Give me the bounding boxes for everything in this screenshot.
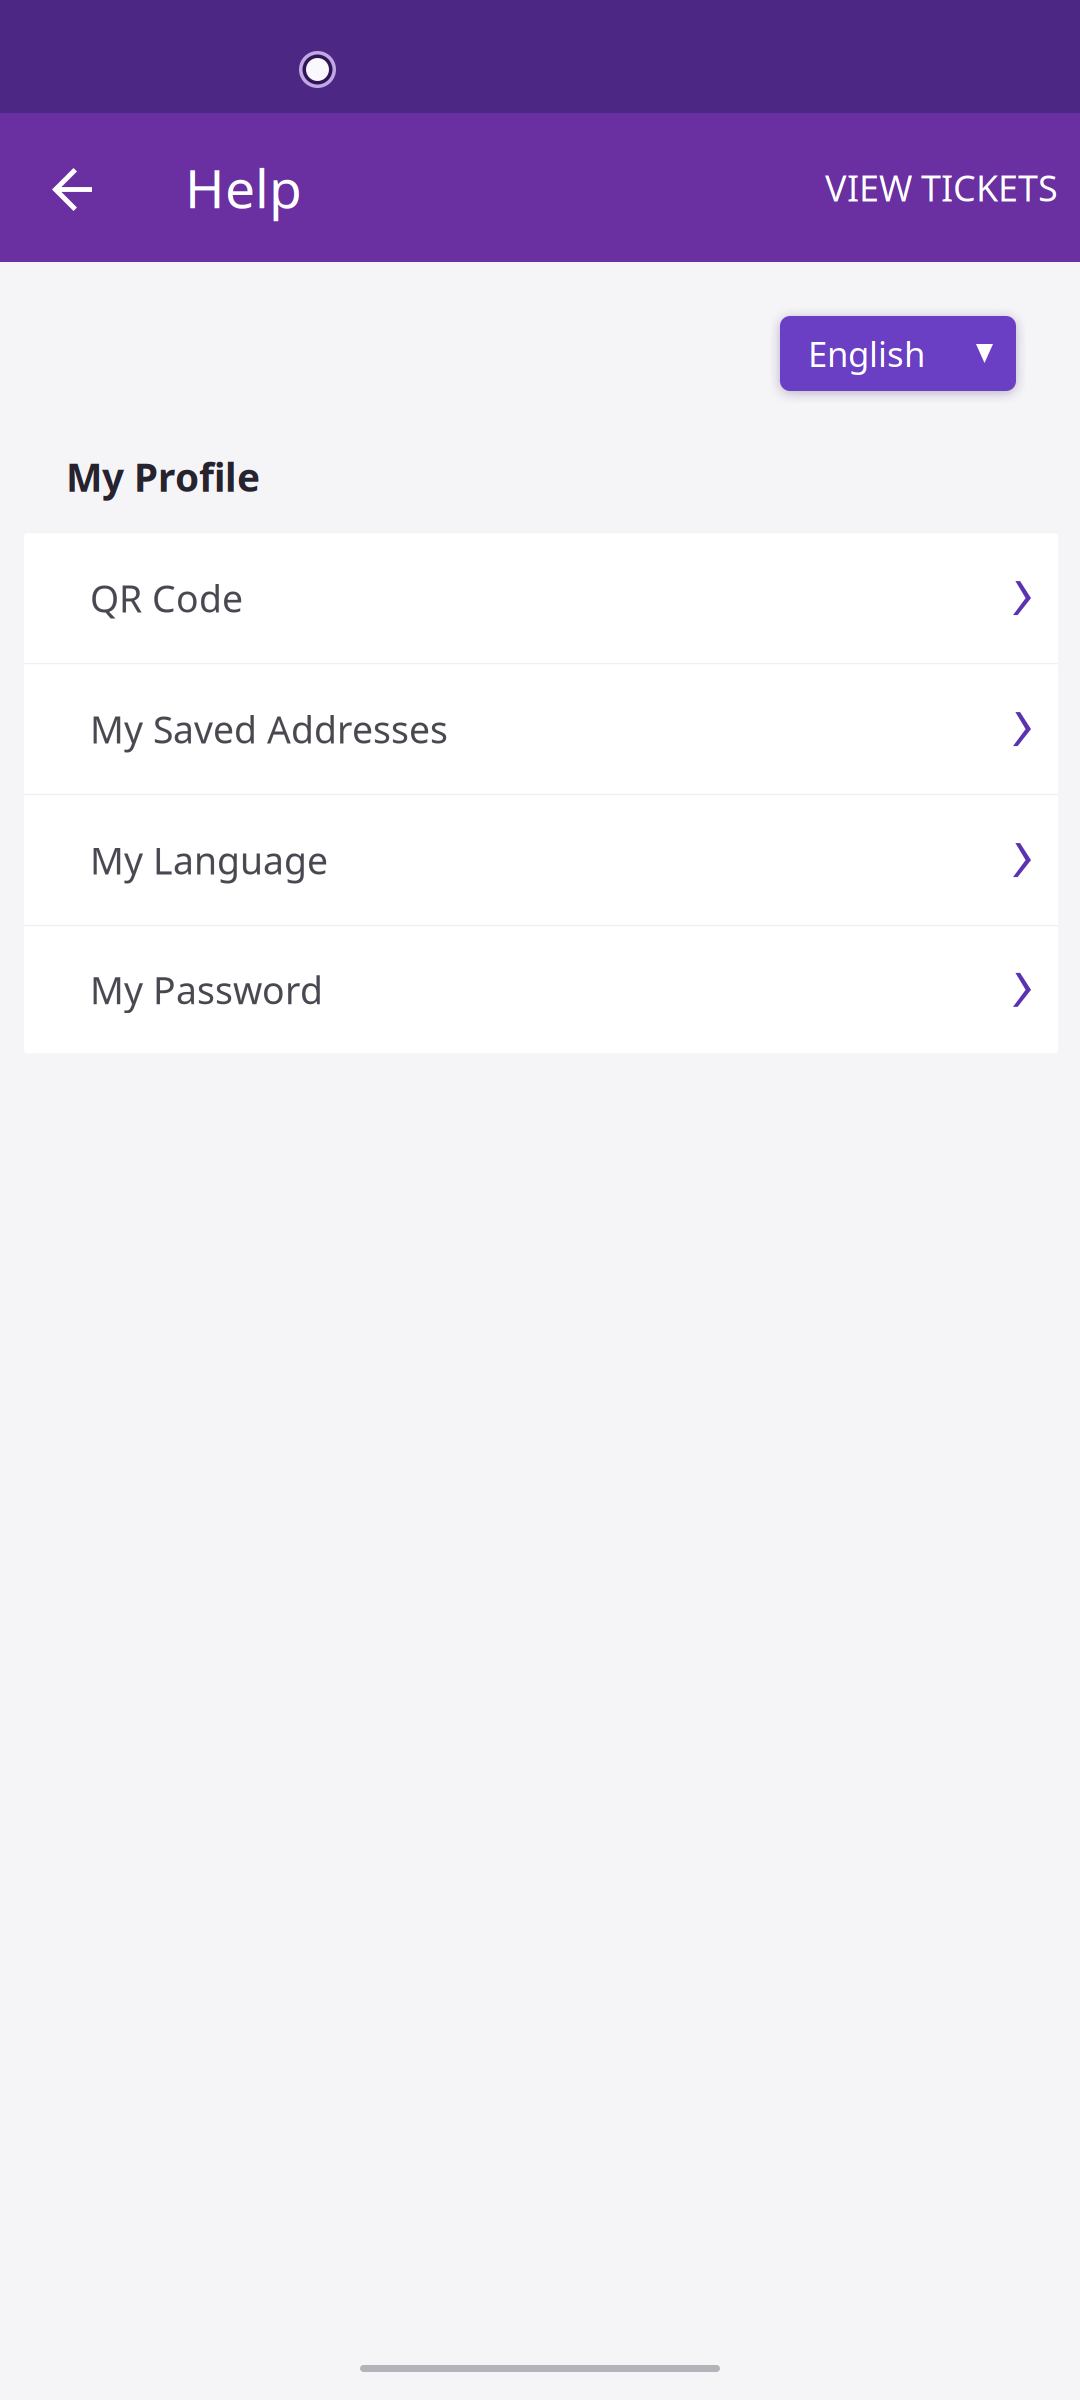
button[interactable]: My Saved Addresses [24, 664, 1058, 795]
staticText: My Password [90, 965, 323, 1015]
button[interactable]: Back [0, 113, 185, 262]
staticText: VIEW TICKETS [825, 164, 1058, 211]
button[interactable]: My Password [24, 926, 1058, 1053]
staticText: My Saved Addresses [90, 704, 448, 754]
staticText: Help [185, 152, 302, 223]
button[interactable]: QR Code [24, 533, 1058, 664]
staticText: My Language [90, 835, 328, 885]
button[interactable]: My Language [24, 795, 1058, 926]
staticText: My Profile [66, 451, 260, 502]
staticText: English [808, 330, 925, 376]
button[interactable]: VIEW TICKETS [803, 113, 1080, 262]
staticText: QR Code [90, 573, 243, 623]
button[interactable]: English [780, 316, 1016, 391]
